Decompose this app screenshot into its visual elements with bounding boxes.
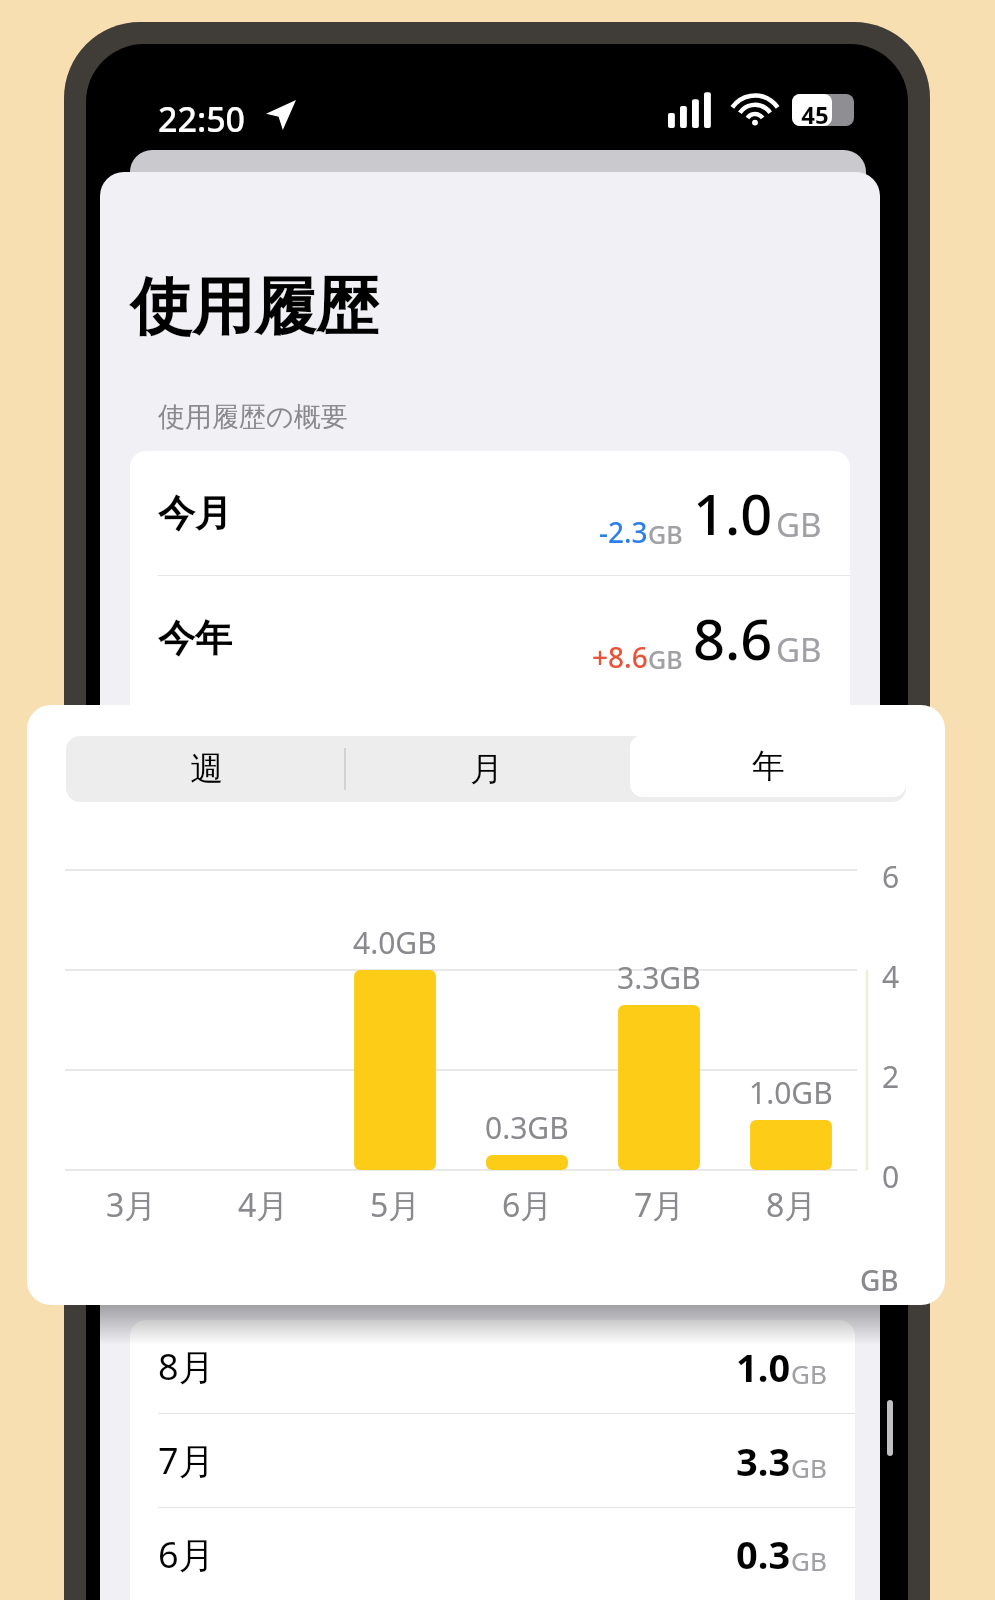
staticText: 0.3GB <box>485 1107 569 1148</box>
staticText: 0.3 <box>736 1528 791 1580</box>
staticText: 4.0GB <box>353 922 437 963</box>
staticText: 1.0 <box>736 1341 791 1393</box>
staticText: 7月 <box>158 1436 215 1485</box>
staticText: 8月 <box>766 1183 817 1227</box>
staticText: GB <box>791 1356 827 1391</box>
staticText: 3.3GB <box>617 957 701 998</box>
staticText: GB <box>776 502 822 547</box>
staticText: 週 <box>190 748 223 790</box>
button[interactable]: 8月 <box>130 1320 855 1413</box>
staticText: 8月 <box>158 1342 215 1391</box>
staticText: 8.6 <box>693 600 773 676</box>
staticText: 使用履歴 <box>130 268 378 346</box>
staticText: 5月 <box>370 1183 421 1227</box>
staticText: GB <box>791 1543 827 1578</box>
button[interactable]: 年 <box>630 735 906 797</box>
button[interactable]: 今月 <box>130 451 850 575</box>
staticText: 3.3 <box>736 1435 791 1487</box>
staticText: 1.0 <box>693 475 773 551</box>
staticText: 2 <box>882 1056 900 1097</box>
button[interactable]: 月 <box>346 736 626 802</box>
staticText: GB <box>648 642 683 676</box>
button[interactable]: 週 <box>66 736 346 802</box>
staticText: 45 <box>795 98 835 131</box>
staticText: 6 <box>882 856 900 897</box>
staticText: 使用履歴の概要 <box>158 400 348 434</box>
staticText: 7月 <box>634 1183 685 1227</box>
staticText: 6月 <box>158 1530 215 1579</box>
staticText: GB <box>648 517 683 551</box>
button[interactable] <box>626 736 906 802</box>
staticText: 22:50 <box>158 96 246 142</box>
staticText: +8.6 <box>592 638 648 676</box>
staticText: 6月 <box>502 1183 553 1227</box>
staticText: 月 <box>470 748 503 790</box>
staticText: 1.0GB <box>749 1072 833 1113</box>
staticText: -2.3 <box>599 513 648 551</box>
staticText: 4 <box>882 956 900 997</box>
staticText: 0 <box>882 1156 900 1197</box>
button[interactable]: 6月 <box>130 1508 855 1600</box>
staticText: 年 <box>752 745 785 787</box>
button[interactable]: 今年 <box>130 576 850 700</box>
staticText: 今年 <box>158 615 232 662</box>
staticText: 4月 <box>238 1183 289 1227</box>
staticText: GB <box>860 1261 899 1299</box>
staticText: 3月 <box>106 1183 157 1227</box>
button[interactable]: 7月 <box>130 1414 855 1507</box>
staticText: 今月 <box>158 490 232 537</box>
staticText: GB <box>791 1450 827 1485</box>
staticText: GB <box>776 627 822 672</box>
